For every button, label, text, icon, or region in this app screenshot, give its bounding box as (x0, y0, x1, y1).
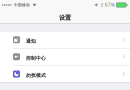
staticText: 通知 (26, 38, 36, 44)
button[interactable]: 控制中心 (0, 48, 130, 65)
staticText: 67% (105, 2, 115, 8)
staticText: 勿扰模式 (26, 72, 46, 78)
button[interactable]: 通知 (0, 31, 130, 48)
staticText: 中国移动 (14, 3, 30, 7)
staticText: 设置 (59, 14, 71, 22)
staticText: 控制中心 (26, 55, 46, 61)
button[interactable]: 勿扰模式 (0, 65, 130, 82)
